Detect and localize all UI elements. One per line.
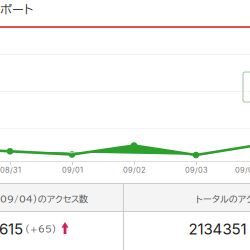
- staticText: 09/03: [185, 165, 208, 174]
- staticText: 09/04）のアクセス数: [0, 194, 88, 203]
- staticText: ポート: [0, 3, 33, 15]
- staticText: （+65）: [25, 224, 57, 233]
- staticText: 08/31: [0, 165, 21, 174]
- staticText: 2134351: [188, 220, 246, 238]
- staticText: 09/04: [235, 165, 250, 174]
- staticText: 615: [0, 220, 23, 238]
- staticText: 09/01: [62, 165, 83, 174]
- staticText: トータルのアクセス: [196, 194, 250, 203]
- staticText: 09/02: [123, 165, 146, 174]
